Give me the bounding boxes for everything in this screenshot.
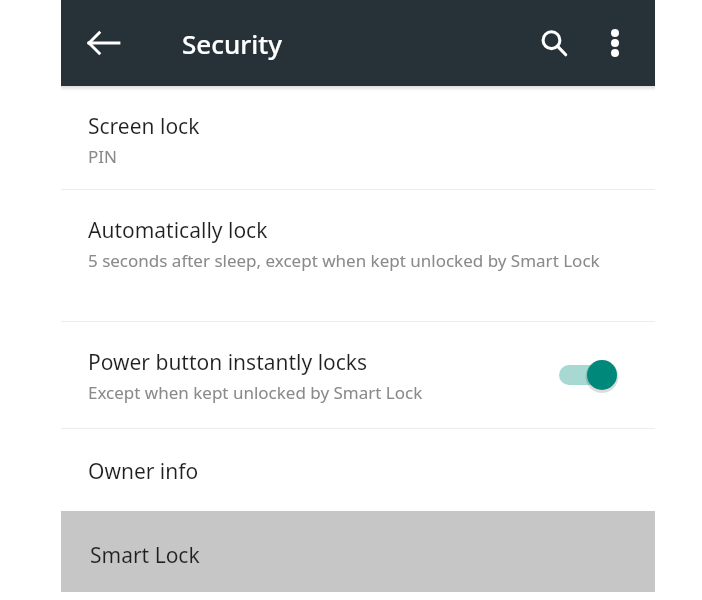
button[interactable]: Screen lock bbox=[61, 91, 655, 189]
button[interactable]: Search bbox=[526, 15, 582, 71]
staticText: Smart Lock bbox=[90, 541, 200, 570]
staticText: Automatically lock bbox=[88, 216, 268, 245]
staticText: 5 seconds after sleep, except when kept … bbox=[88, 249, 628, 272]
button[interactable]: Automatically lock bbox=[61, 190, 655, 321]
staticText: PIN bbox=[88, 145, 117, 168]
button[interactable]: Owner info bbox=[61, 429, 655, 511]
staticText: Power button instantly locks bbox=[88, 348, 368, 377]
button[interactable]: Back bbox=[76, 15, 132, 71]
button[interactable]: Power button instantly locks toggle bbox=[554, 351, 626, 399]
staticText: Screen lock bbox=[88, 112, 200, 141]
staticText: Owner info bbox=[88, 457, 199, 486]
button[interactable]: Smart Lock bbox=[61, 511, 655, 592]
button[interactable]: Power button instantly locks bbox=[61, 322, 655, 428]
button[interactable]: More options bbox=[587, 15, 643, 71]
staticText: Security bbox=[182, 26, 282, 61]
staticText: Except when kept unlocked by Smart Lock bbox=[88, 381, 423, 404]
